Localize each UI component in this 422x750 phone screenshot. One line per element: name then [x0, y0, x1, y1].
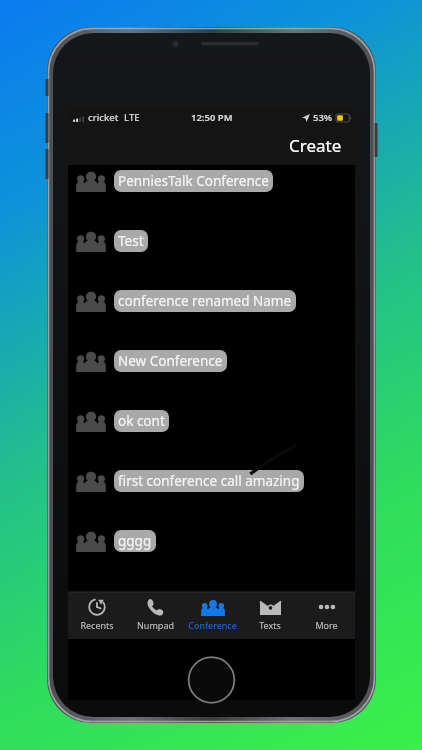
staticText: New Conference — [118, 352, 223, 370]
staticText: Test — [118, 232, 144, 250]
button[interactable]: first conference call amazing — [68, 451, 355, 511]
staticText: More — [315, 619, 338, 631]
button[interactable]: New Conference — [68, 331, 355, 391]
staticText: Create — [289, 134, 342, 157]
staticText: cricket — [88, 111, 119, 124]
staticText: Texts — [259, 619, 281, 631]
button[interactable]: conference renamed Name — [68, 271, 355, 331]
staticText: gggg — [118, 532, 152, 550]
button[interactable]: Numpad — [126, 592, 184, 639]
button[interactable]: Test — [68, 211, 355, 271]
staticText: Recents — [80, 619, 114, 631]
staticText: 53% — [313, 111, 333, 124]
button[interactable]: Conference — [184, 592, 241, 639]
staticText: conference renamed Name — [118, 292, 292, 310]
button[interactable]: Texts — [241, 592, 298, 639]
button[interactable]: More — [298, 592, 355, 639]
staticText: Conference — [188, 619, 237, 631]
staticText: 12:50 PM — [191, 111, 233, 124]
button[interactable]: Recents — [68, 592, 126, 639]
staticText: first conference call amazing — [118, 472, 300, 490]
button[interactable]: Create — [276, 128, 355, 163]
button[interactable]: PenniesTalk Conference — [68, 151, 355, 211]
button[interactable]: gggg — [68, 511, 355, 571]
staticText: LTE — [124, 111, 140, 124]
staticText: ok cont — [118, 412, 165, 430]
staticText: PenniesTalk Conference — [118, 172, 269, 190]
staticText: Numpad — [137, 619, 174, 631]
button[interactable]: ok cont — [68, 391, 355, 451]
